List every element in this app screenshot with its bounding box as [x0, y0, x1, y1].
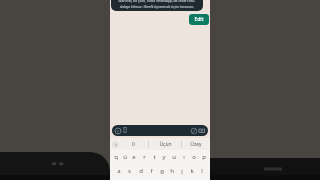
button[interactable]: y — [159, 152, 169, 161]
other: Emoji — [115, 128, 121, 134]
staticText: Edit — [194, 16, 204, 23]
button[interactable]: k — [187, 166, 197, 175]
other: Sticker — [191, 128, 197, 134]
staticText: ü — [123, 153, 127, 161]
button[interactable]: ı — [179, 152, 189, 161]
staticText: y — [162, 153, 166, 161]
button[interactable]: Expand toolbar — [112, 141, 119, 148]
button[interactable]: r — [139, 152, 149, 161]
button[interactable]: 0 — [119, 138, 148, 150]
staticText: d — [139, 167, 143, 175]
button[interactable]: d — [135, 166, 146, 175]
staticText: f — [150, 167, 153, 175]
staticText: h — [170, 167, 174, 175]
button[interactable]: j — [177, 166, 187, 175]
staticText: a — [117, 167, 121, 175]
staticText: k — [190, 167, 194, 175]
button[interactable]: q — [111, 152, 120, 161]
button[interactable]: s — [124, 166, 135, 175]
button[interactable]: Üzey — [182, 138, 210, 150]
staticText: g — [160, 167, 164, 175]
other: Attach — [123, 127, 127, 134]
staticText: p — [202, 153, 206, 161]
staticText: l — [201, 167, 203, 175]
other: Camera — [199, 128, 205, 133]
staticText: olan heç bir şəxs, hətta WhatsApp-da onl… — [115, 0, 199, 3]
button[interactable]: u — [169, 152, 179, 161]
button[interactable]: Edit — [189, 14, 209, 25]
button[interactable]: p — [199, 152, 209, 161]
button[interactable]: h — [167, 166, 177, 175]
staticText: Üzey — [190, 141, 202, 148]
button[interactable]: t — [149, 152, 159, 161]
staticText: Üçün — [159, 141, 172, 148]
staticText: 0 — [132, 141, 135, 148]
staticText: r — [143, 153, 146, 161]
button[interactable]: Emoji — [112, 125, 208, 136]
button[interactable]: g — [157, 166, 167, 175]
staticText: dalaya bilməz. Ətraflı öyrənmək üçün tox… — [115, 4, 199, 9]
staticText: o — [192, 153, 196, 161]
staticText: s — [128, 167, 131, 175]
staticText: e — [132, 153, 136, 161]
button[interactable]: Üçün — [149, 138, 181, 150]
staticText: q — [114, 153, 118, 161]
staticText: j — [181, 167, 183, 175]
staticText: ı — [183, 153, 185, 161]
staticText: u — [172, 153, 176, 161]
button[interactable]: a — [113, 166, 124, 175]
button[interactable]: f — [146, 166, 157, 175]
button[interactable]: o — [189, 152, 199, 161]
button[interactable]: olan heç bir şəxs, hətta WhatsApp-da onl… — [111, 0, 203, 11]
button[interactable]: e — [129, 152, 139, 161]
button[interactable]: l — [197, 166, 207, 175]
staticText: t — [153, 153, 156, 161]
button[interactable]: ü — [120, 152, 129, 161]
